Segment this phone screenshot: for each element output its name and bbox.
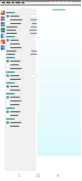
button[interactable]: [5, 88, 38, 92]
button[interactable]: [5, 67, 38, 70]
button[interactable]: Catalog: [1, 34, 5, 38]
button[interactable]: [5, 42, 38, 46]
button[interactable]: Toolbar item: [1, 2, 3, 4]
button[interactable]: [5, 121, 38, 124]
button[interactable]: Catalog: [1, 22, 5, 27]
button[interactable]: Toolbar item: [20, 2, 23, 4]
button[interactable]: [5, 99, 38, 103]
button[interactable]: Catalog: [1, 45, 5, 50]
button[interactable]: Catalog: [1, 10, 5, 15]
button[interactable]: Catalog: [1, 39, 5, 44]
button[interactable]: [5, 124, 38, 128]
button[interactable]: [5, 46, 38, 49]
button[interactable]: Toolbar item: [5, 2, 7, 4]
button[interactable]: [5, 14, 38, 18]
button[interactable]: [5, 22, 38, 25]
button[interactable]: Toolbar item: [24, 2, 26, 4]
button[interactable]: [5, 38, 38, 42]
button[interactable]: [5, 114, 38, 117]
button[interactable]: [5, 110, 38, 114]
button[interactable]: Catalog: [1, 16, 5, 21]
button[interactable]: [5, 59, 38, 63]
button[interactable]: Run: [16, 2, 19, 4]
button[interactable]: [5, 77, 38, 81]
button[interactable]: [5, 103, 38, 106]
button[interactable]: [5, 63, 38, 67]
button[interactable]: Toolbar item: [9, 2, 12, 4]
button[interactable]: [5, 95, 38, 99]
button[interactable]: [5, 18, 38, 22]
button[interactable]: Toolbar item: [13, 2, 15, 4]
button[interactable]: [5, 74, 38, 77]
button[interactable]: Catalog: [1, 28, 5, 32]
button[interactable]: [5, 85, 38, 88]
